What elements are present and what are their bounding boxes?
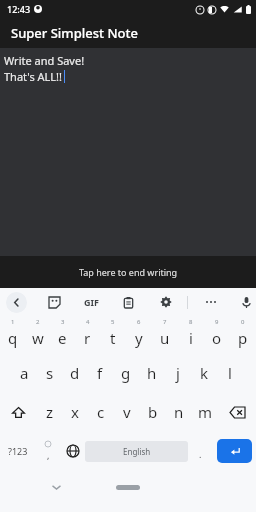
staticText: o — [212, 328, 222, 348]
button[interactable]: b — [140, 392, 166, 432]
button[interactable]: h — [139, 354, 165, 392]
button[interactable]: 3 — [50, 316, 75, 354]
staticText: m — [198, 402, 213, 422]
staticText: Write and Save! — [4, 53, 85, 68]
button[interactable]: j — [165, 354, 191, 392]
button[interactable]: k — [191, 354, 217, 392]
button[interactable]: a — [12, 354, 37, 392]
staticText: Super Simplest Note — [11, 24, 138, 42]
staticText: i — [189, 328, 193, 348]
button[interactable]: Clipboard — [117, 291, 139, 313]
button[interactable]: Home — [116, 485, 140, 490]
button[interactable]: z — [37, 392, 62, 432]
staticText: b — [148, 402, 158, 422]
button[interactable]: l — [217, 354, 243, 392]
button[interactable]: Shift — [0, 392, 37, 432]
staticText: a — [20, 363, 29, 383]
staticText: y — [135, 328, 143, 348]
staticText: GIF — [84, 296, 99, 308]
button[interactable]: Enter — [217, 439, 252, 463]
staticText: 6 — [137, 318, 141, 326]
staticText: 4 — [86, 318, 90, 326]
staticText: 3 — [61, 318, 65, 326]
button[interactable]: x — [62, 392, 88, 432]
staticText: , — [47, 449, 50, 461]
button[interactable]: 6 — [126, 316, 152, 354]
button[interactable]: v — [114, 392, 140, 432]
staticText: t — [110, 328, 116, 348]
button[interactable]: 5 — [100, 316, 126, 354]
staticText: f — [97, 363, 103, 383]
button[interactable]: Change language — [60, 432, 85, 470]
staticText: p — [238, 328, 248, 348]
button[interactable]: f — [87, 354, 113, 392]
button[interactable]: 8 — [178, 316, 204, 354]
staticText: g — [121, 363, 131, 383]
staticText: s — [46, 363, 54, 383]
button[interactable]: 9 — [204, 316, 230, 354]
button[interactable]: ?123 — [0, 432, 35, 470]
button[interactable]: s — [37, 354, 62, 392]
button[interactable]: Emoji and comma — [35, 432, 60, 470]
staticText: j — [176, 363, 180, 383]
staticText: 2 — [36, 318, 40, 326]
staticText: 1 — [11, 318, 15, 326]
button[interactable]: c — [88, 392, 114, 432]
button[interactable]: English — [85, 441, 188, 462]
staticText: 8 — [189, 318, 193, 326]
button[interactable]: Hide keyboard — [46, 477, 66, 497]
button[interactable]: 0 — [230, 316, 256, 354]
button[interactable]: More options — [200, 291, 222, 313]
button[interactable]: Write and Save! — [0, 48, 256, 256]
staticText: q — [8, 328, 18, 348]
button[interactable]: Backspace — [218, 392, 256, 432]
staticText: h — [147, 363, 157, 383]
button[interactable]: Stickers — [43, 291, 65, 313]
staticText: r — [84, 328, 91, 348]
staticText: English — [123, 446, 151, 457]
button[interactable]: 4 — [75, 316, 100, 354]
staticText: ?123 — [8, 445, 28, 457]
staticText: u — [160, 328, 170, 348]
staticText: That's ALL!! — [4, 69, 63, 84]
staticText: Tap here to end writing — [79, 266, 178, 278]
button[interactable]: . — [188, 432, 213, 470]
button[interactable]: 7 — [152, 316, 178, 354]
button[interactable]: g — [113, 354, 139, 392]
staticText: c — [97, 402, 105, 422]
staticText: . — [199, 448, 202, 460]
staticText: z — [46, 402, 54, 422]
staticText: v — [123, 402, 131, 422]
staticText: 7 — [163, 318, 167, 326]
button[interactable]: d — [62, 354, 87, 392]
button[interactable]: n — [166, 392, 192, 432]
button[interactable]: Tap here to end writing — [0, 256, 256, 288]
staticText: d — [70, 363, 80, 383]
staticText: e — [58, 328, 67, 348]
staticText: k — [200, 363, 209, 383]
button[interactable]: m — [192, 392, 218, 432]
button[interactable]: 1 — [0, 316, 25, 354]
staticText: l — [228, 363, 232, 383]
staticText: n — [174, 402, 184, 422]
button[interactable]: Voice input — [236, 291, 256, 313]
button[interactable]: Settings — [155, 291, 177, 313]
staticText: 9 — [215, 318, 219, 326]
button[interactable]: GIF — [79, 290, 103, 314]
button[interactable]: 2 — [25, 316, 50, 354]
staticText: 5 — [111, 318, 115, 326]
staticText: x — [71, 402, 79, 422]
staticText: 0 — [241, 318, 245, 326]
staticText: 12:43 — [7, 3, 31, 15]
button[interactable]: Back — [6, 292, 27, 313]
staticText: w — [32, 328, 44, 348]
